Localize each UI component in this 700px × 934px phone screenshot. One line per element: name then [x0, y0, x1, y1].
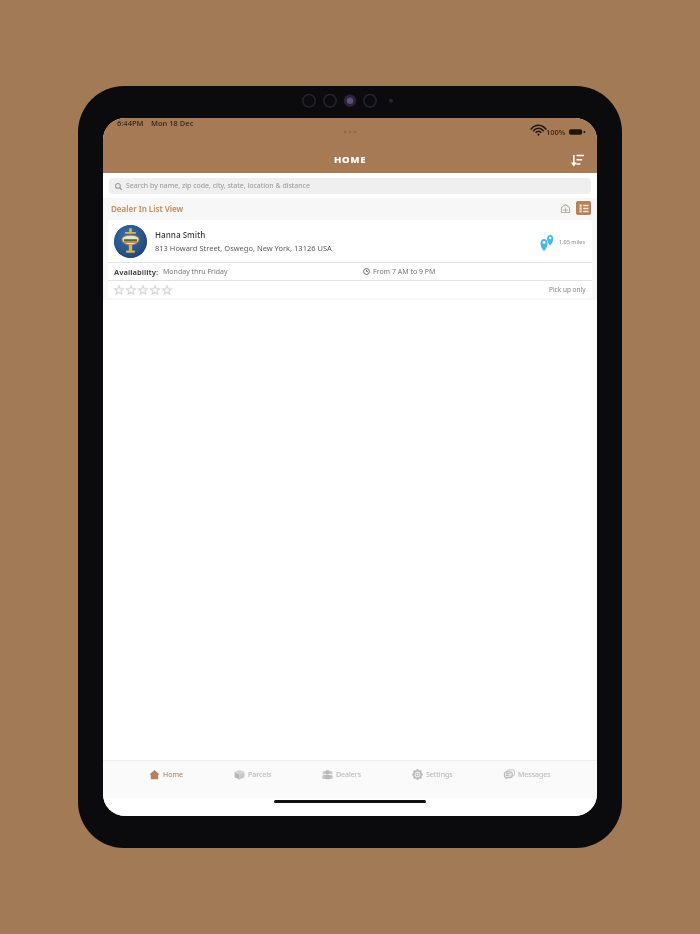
- button[interactable]: List view: [576, 201, 591, 215]
- button[interactable]: Map view: [558, 201, 572, 215]
- staticText: Dealer In List View: [111, 203, 184, 214]
- button[interactable]: Rate star: [126, 285, 136, 295]
- staticText: Hanna Smith: [155, 229, 206, 240]
- staticText: Home: [163, 770, 183, 780]
- button[interactable]: Dealers: [317, 767, 366, 782]
- button[interactable]: Home: [144, 767, 188, 782]
- staticText: Search by name, zip code, city, state, l…: [126, 181, 310, 191]
- staticText: From 7 AM to 9 PM: [373, 267, 436, 277]
- button[interactable]: Search by name, zip code, city, state, l…: [109, 178, 591, 194]
- staticText: 813 Howard Street, Oswego, New York, 131…: [155, 243, 332, 253]
- button[interactable]: Sort: [567, 150, 587, 170]
- staticText: 100%: [546, 127, 566, 137]
- button[interactable]: Rate star: [150, 285, 160, 295]
- staticText: Messages: [518, 770, 551, 780]
- button[interactable]: Rate star: [114, 285, 124, 295]
- button[interactable]: Rate star: [162, 285, 172, 295]
- staticText: 1.05 miles: [559, 238, 586, 245]
- button[interactable]: Rate star: [138, 285, 148, 295]
- staticText: Mon 18 Dec: [151, 118, 194, 128]
- staticText: Dealers: [336, 770, 361, 780]
- staticText: Monday thru Friday: [163, 267, 228, 277]
- staticText: HOME: [334, 153, 367, 166]
- staticText: 6:44PM: [117, 118, 144, 128]
- staticText: Settings: [426, 770, 453, 780]
- button[interactable]: Messages: [499, 767, 556, 782]
- staticText: Parcels: [248, 770, 272, 780]
- staticText: Availability:: [114, 267, 159, 277]
- staticText: Pick up only: [549, 285, 586, 294]
- button[interactable]: Parcels: [229, 767, 277, 782]
- button[interactable]: Hanna Smith: [108, 220, 592, 298]
- button[interactable]: Settings: [407, 767, 458, 782]
